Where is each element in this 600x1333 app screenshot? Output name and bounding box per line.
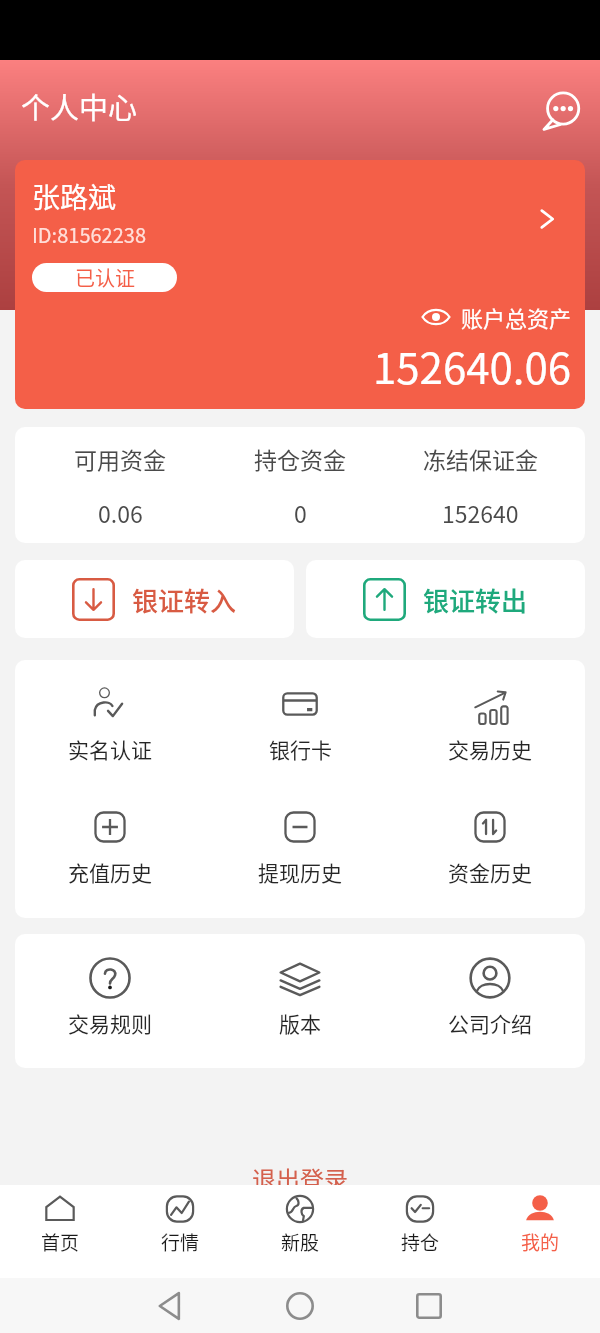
staticText: 首页 — [41, 1228, 80, 1256]
button[interactable]: 我的 — [480, 1185, 600, 1278]
button[interactable]: 公司介绍 — [395, 956, 585, 1038]
staticText: 银证转出 — [423, 581, 528, 619]
button[interactable]: 交易规则 — [15, 956, 205, 1038]
staticText: 0.06 — [98, 496, 143, 529]
staticText: 充值历史 — [68, 857, 152, 887]
button[interactable]: Back — [107, 1278, 235, 1333]
button[interactable]: 资金历史 — [395, 805, 585, 887]
staticText: 152640.06 — [373, 335, 572, 396]
button[interactable]: 首页 — [0, 1185, 120, 1278]
button[interactable]: 张路斌 — [15, 160, 585, 409]
button[interactable]: Recents — [364, 1278, 493, 1333]
button[interactable]: 充值历史 — [15, 805, 205, 887]
staticText: 银行卡 — [269, 734, 332, 764]
staticText: 冻结保证金 — [423, 442, 538, 475]
staticText: 行情 — [161, 1228, 200, 1256]
staticText: 银证转入 — [132, 581, 237, 619]
button[interactable]: 版本 — [205, 956, 395, 1038]
staticText: 持仓资金 — [254, 442, 346, 475]
staticText: 提现历史 — [258, 857, 342, 887]
button[interactable]: 交易历史 — [395, 682, 585, 764]
staticText: 新股 — [281, 1228, 320, 1256]
staticText: 交易历史 — [448, 734, 532, 764]
button[interactable]: 行情 — [120, 1185, 240, 1278]
button[interactable]: 新股 — [240, 1185, 360, 1278]
button[interactable]: 已认证 — [32, 263, 177, 292]
staticText: 已认证 — [75, 263, 135, 292]
staticText: 个人中心 — [21, 85, 138, 127]
button[interactable]: Home — [235, 1278, 364, 1333]
button[interactable]: 实名认证 — [15, 682, 205, 764]
staticText: 退出登录 — [0, 1161, 600, 1185]
staticText: 我的 — [521, 1228, 560, 1256]
button[interactable]: 银证转出 — [306, 560, 585, 638]
staticText: 公司介绍 — [448, 1008, 532, 1038]
staticText: 0 — [294, 496, 307, 529]
button[interactable]: Details — [534, 206, 560, 232]
staticText: 持仓 — [401, 1228, 440, 1256]
staticText: 账户总资产 — [461, 301, 572, 333]
staticText: 152640 — [442, 496, 519, 529]
button[interactable]: 银行卡 — [205, 682, 395, 764]
button[interactable]: 持仓 — [360, 1185, 480, 1278]
staticText: 实名认证 — [68, 734, 152, 764]
staticText: 版本 — [279, 1008, 321, 1038]
button[interactable]: 持仓资金 — [210, 427, 390, 543]
button[interactable]: 银证转入 — [15, 560, 294, 638]
staticText: 交易规则 — [68, 1008, 152, 1038]
button[interactable]: Messages — [537, 86, 585, 134]
staticText: 张路斌 — [32, 176, 117, 217]
button[interactable]: 提现历史 — [205, 805, 395, 887]
staticText: 可用资金 — [74, 442, 166, 475]
button[interactable]: 可用资金 — [30, 427, 210, 543]
staticText: ID:81562238 — [32, 220, 146, 249]
staticText: 资金历史 — [448, 857, 532, 887]
button[interactable]: 冻结保证金 — [390, 427, 570, 543]
